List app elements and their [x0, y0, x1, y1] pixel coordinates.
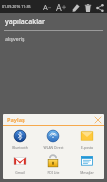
staticText: 01.09.2016 11:35: [2, 4, 31, 9]
button[interactable]: Mesajlar: [70, 153, 104, 176]
button[interactable]: Bluetooth: [3, 128, 36, 151]
staticText: Bluetooth: [12, 145, 28, 150]
staticText: Mesajlar: [80, 170, 94, 175]
button[interactable]: Share: [94, 2, 105, 13]
button[interactable]: Edit: [70, 2, 81, 13]
staticText: alışveriş: [5, 35, 25, 42]
button[interactable]: Decrease text size: [41, 1, 53, 13]
button[interactable]: Close: [93, 115, 102, 124]
staticText: yapılacaklar: [5, 17, 46, 27]
staticText: A: [56, 1, 62, 13]
staticText: Paylaş: [7, 116, 25, 124]
staticText: E-posta: [81, 145, 93, 150]
button[interactable]: Increase text size: [54, 1, 67, 13]
staticText: WLAN Direct: [43, 145, 64, 150]
button[interactable]: Gmail: [3, 153, 36, 176]
button[interactable]: FDI Lite: [36, 153, 70, 176]
button[interactable]: Delete: [82, 2, 93, 13]
staticText: FDI Lite: [47, 170, 60, 175]
button[interactable]: E-posta: [70, 128, 104, 151]
staticText: A: [43, 2, 48, 12]
staticText: Gmail: [15, 170, 25, 175]
button[interactable]: WLAN Direct: [36, 128, 70, 151]
